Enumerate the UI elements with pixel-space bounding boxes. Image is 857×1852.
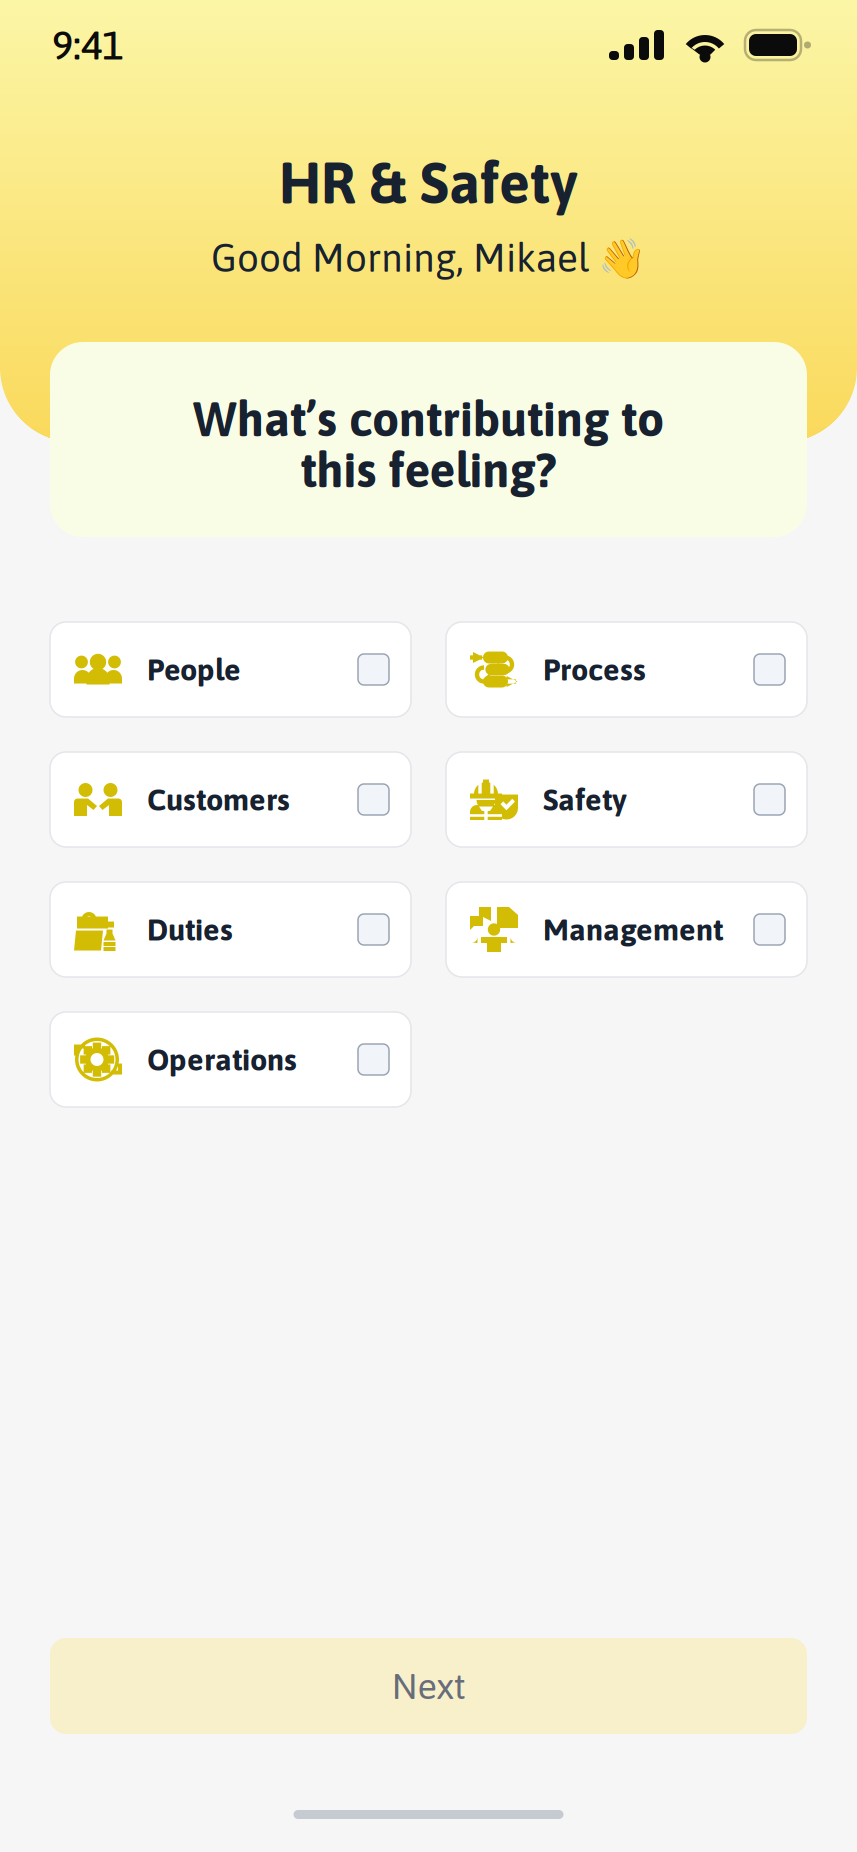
staticText: Process [543, 652, 646, 687]
staticText: Next [391, 1665, 465, 1707]
staticText: Operations [147, 1042, 297, 1077]
button[interactable]: Next [50, 1638, 807, 1734]
staticText: this feeling? [300, 442, 556, 497]
staticText: What’s contributing to [193, 391, 664, 446]
button[interactable]: Customers [50, 752, 411, 847]
staticText: 9:41 [52, 22, 123, 68]
button[interactable]: Management [446, 882, 807, 977]
button[interactable]: Operations [50, 1012, 411, 1107]
staticText: People [147, 652, 241, 687]
button[interactable]: People [50, 622, 411, 717]
button[interactable]: Safety [446, 752, 807, 847]
staticText: Duties [147, 912, 233, 947]
staticText: HR & Safety [279, 150, 578, 216]
staticText: Safety [543, 782, 627, 817]
button[interactable]: Duties [50, 882, 411, 977]
button[interactable]: Process [446, 622, 807, 717]
staticText: Good Morning, Mikael 👋 [211, 236, 646, 281]
staticText: Customers [147, 782, 290, 817]
staticText: Management [543, 912, 723, 947]
